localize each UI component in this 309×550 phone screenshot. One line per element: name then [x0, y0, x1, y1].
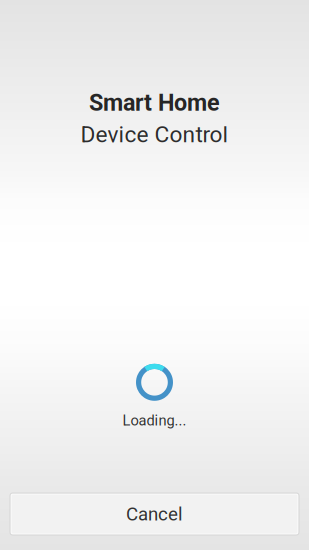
button[interactable]: Cancel: [10, 493, 299, 535]
staticText: Loading...: [122, 412, 186, 429]
staticText: Cancel: [126, 503, 183, 525]
staticText: Smart Home: [89, 89, 220, 116]
staticText: Device Control: [80, 121, 228, 148]
